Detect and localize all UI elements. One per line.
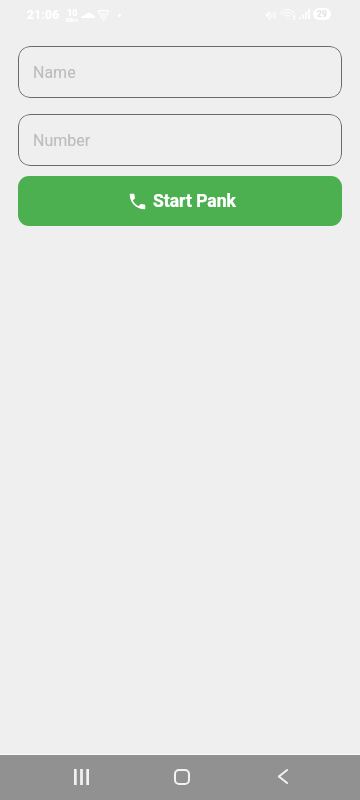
staticText: 21:06 [27, 8, 60, 22]
staticText: 29 [317, 9, 327, 19]
staticText: KB/s [66, 17, 78, 23]
staticText: 10 [67, 8, 78, 19]
staticText: Name [33, 63, 76, 82]
button[interactable]: Recent apps [57, 754, 105, 799]
button[interactable]: Home [158, 754, 206, 799]
staticText: Number [33, 131, 91, 150]
button[interactable]: Number [18, 114, 342, 166]
button[interactable]: Start Pank [18, 176, 342, 226]
staticText: Start Pank [153, 191, 236, 212]
button[interactable]: Back [259, 754, 307, 799]
button[interactable]: Name [18, 46, 342, 98]
